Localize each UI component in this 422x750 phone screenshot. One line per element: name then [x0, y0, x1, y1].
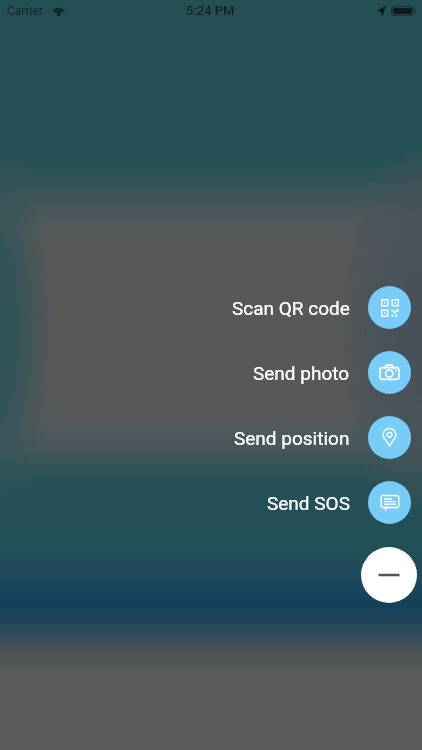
button[interactable]: Send photo — [0, 351, 411, 394]
staticText: Send photo — [253, 362, 350, 384]
staticText: Send position — [234, 427, 350, 449]
button[interactable]: Send SOS — [0, 481, 411, 524]
staticText: Send SOS — [267, 492, 350, 514]
staticText: 5:24 PM — [186, 3, 235, 18]
staticText: Carrier — [7, 4, 43, 18]
button[interactable]: Close menu — [361, 547, 417, 603]
button[interactable]: Send position — [0, 416, 411, 459]
staticText: Scan QR code — [232, 297, 350, 319]
button[interactable]: Scan QR code — [0, 286, 411, 329]
